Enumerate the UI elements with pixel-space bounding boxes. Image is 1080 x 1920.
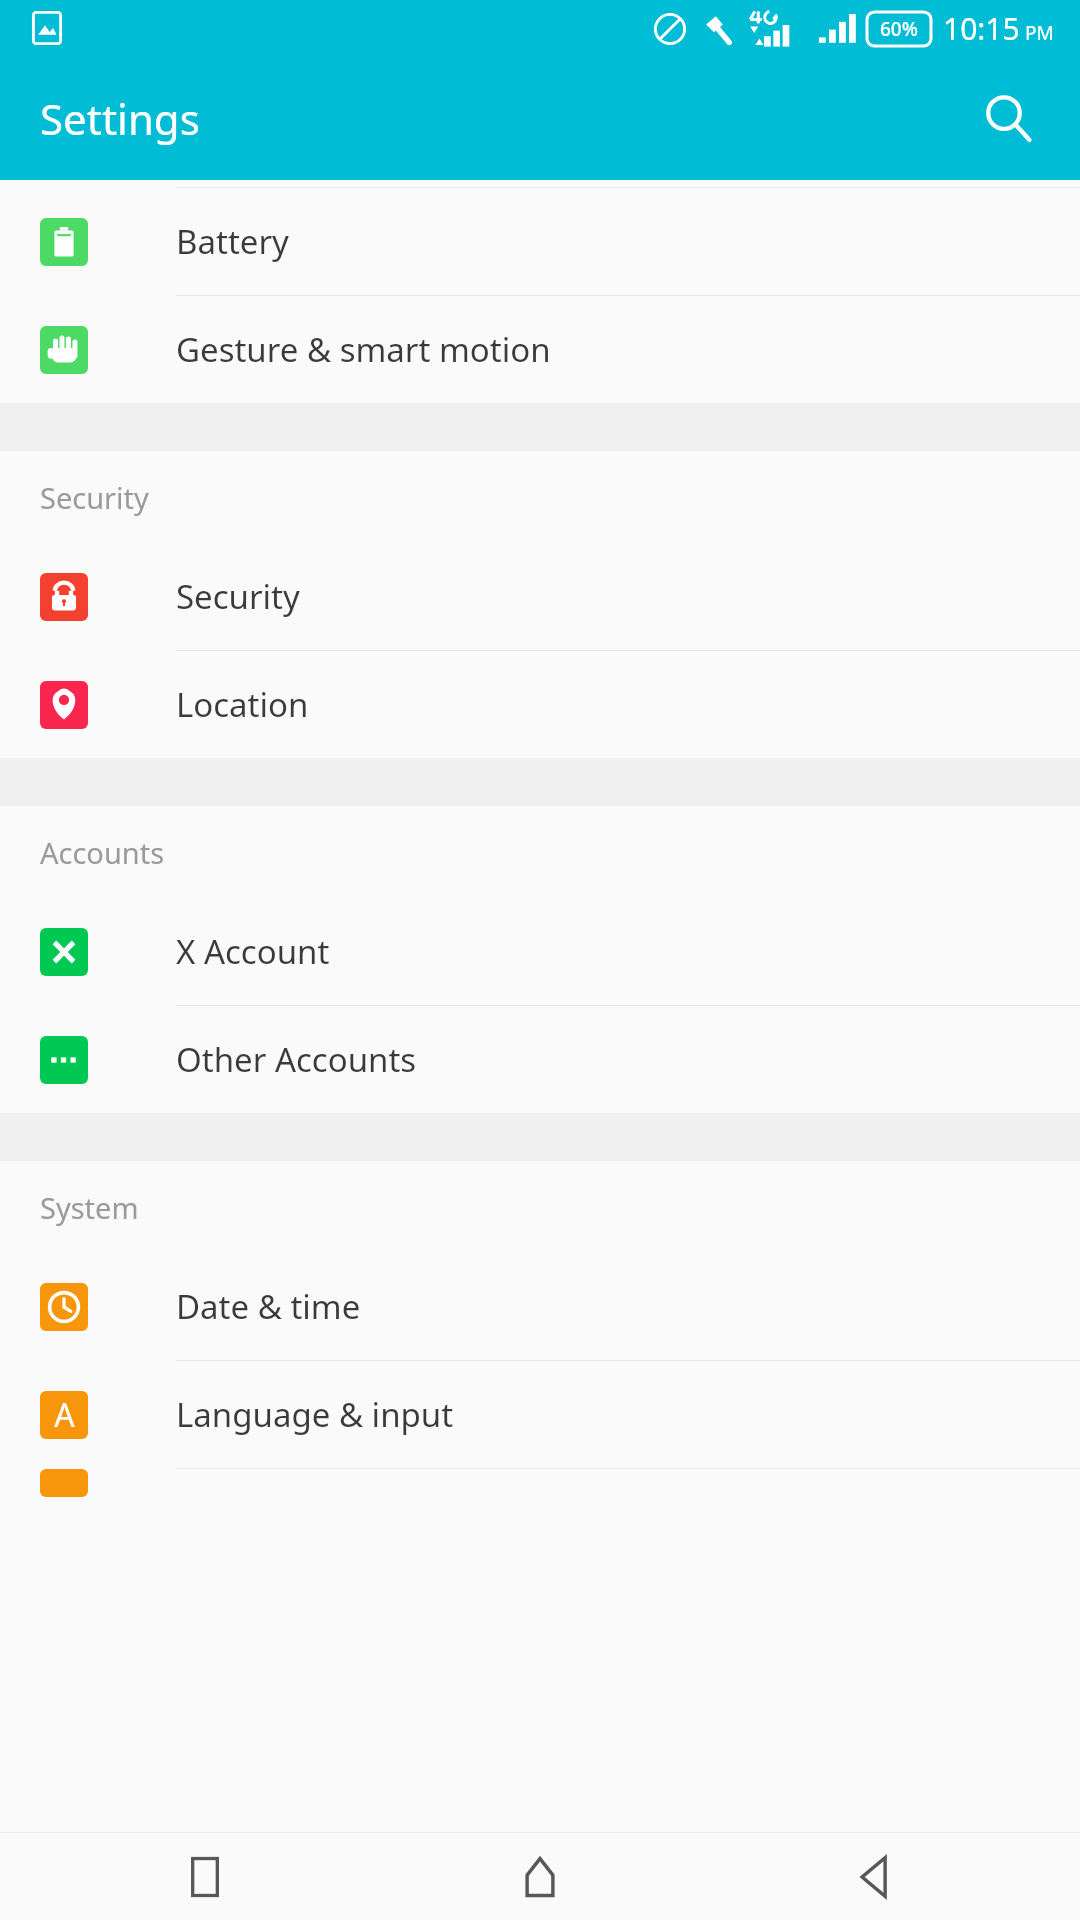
button[interactable]: Battery xyxy=(0,188,1080,295)
button[interactable]: Search xyxy=(962,72,1054,164)
staticText: A xyxy=(54,1393,75,1437)
staticText: Location xyxy=(176,682,309,727)
button[interactable]: Recents xyxy=(150,1833,260,1920)
staticText: Security xyxy=(176,574,300,619)
button[interactable]: Gesture & smart motion xyxy=(0,296,1080,403)
button[interactable]: A xyxy=(0,1361,1080,1468)
button[interactable]: Location xyxy=(0,651,1080,758)
staticText: Other Accounts xyxy=(176,1037,417,1082)
staticText: Settings xyxy=(40,90,200,147)
button[interactable]: Date & time xyxy=(0,1253,1080,1360)
staticText: Gesture & smart motion xyxy=(176,327,551,372)
staticText: 60% xyxy=(880,16,918,42)
staticText: System xyxy=(40,1188,139,1227)
staticText: Language & input xyxy=(176,1392,454,1437)
button[interactable]: Home xyxy=(485,1833,595,1920)
button[interactable]: Other Accounts xyxy=(0,1006,1080,1113)
button[interactable]: X Account xyxy=(0,898,1080,1005)
staticText: 10:15 xyxy=(943,8,1020,49)
staticText: PM xyxy=(1025,20,1054,46)
staticText: X Account xyxy=(176,929,330,974)
button[interactable]: Back xyxy=(820,1833,930,1920)
staticText: Accounts xyxy=(40,833,165,872)
staticText: Battery xyxy=(176,219,289,264)
staticText: Security xyxy=(40,478,149,517)
button[interactable]: Security xyxy=(0,543,1080,650)
staticText: Date & time xyxy=(176,1284,361,1329)
